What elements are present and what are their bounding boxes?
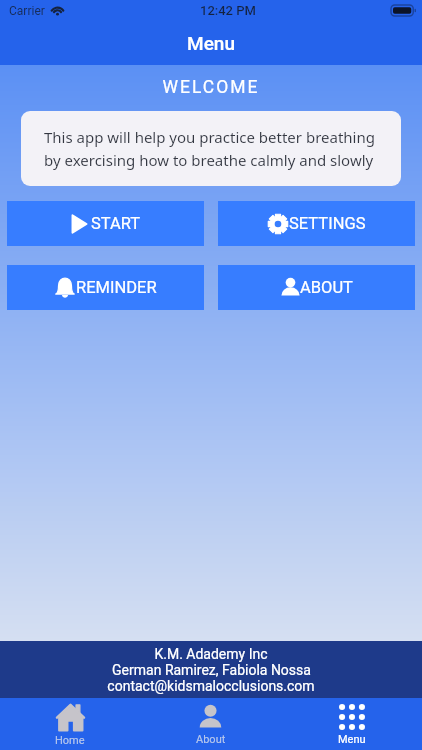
- button[interactable]: SETTINGS: [218, 201, 415, 246]
- staticText: START: [91, 214, 141, 233]
- staticText: Home: [55, 734, 85, 747]
- button[interactable]: Menu: [281, 698, 422, 750]
- staticText: German Ramirez, Fabiola Nossa: [112, 662, 311, 678]
- staticText: SETTINGS: [289, 214, 366, 233]
- button[interactable]: Home: [0, 698, 140, 750]
- staticText: REMINDER: [76, 278, 157, 297]
- staticText: WELCOME: [0, 77, 422, 98]
- button[interactable]: REMINDER: [7, 265, 204, 310]
- staticText: This app will help you practice better b…: [44, 127, 378, 170]
- staticText: K.M. Adademy Inc: [154, 646, 268, 662]
- staticText: contact@kidsmalocclusions.com: [107, 678, 315, 694]
- button[interactable]: ABOUT: [218, 265, 415, 310]
- staticText: About: [196, 733, 226, 746]
- button[interactable]: About: [140, 698, 281, 750]
- staticText: Menu: [0, 32, 422, 54]
- staticText: Carrier: [9, 4, 45, 18]
- staticText: ABOUT: [300, 278, 353, 297]
- button[interactable]: START: [7, 201, 204, 246]
- staticText: 12:42 PM: [200, 3, 256, 18]
- staticText: Menu: [338, 733, 366, 746]
